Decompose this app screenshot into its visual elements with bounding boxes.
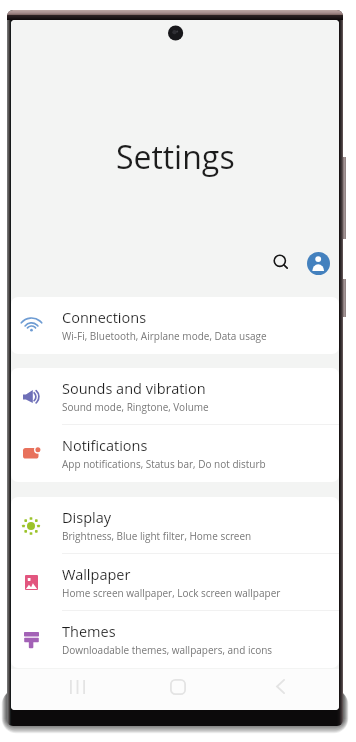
staticText: Sound mode, Ringtone, Volume (62, 400, 209, 414)
staticText: Sounds and vibration (62, 379, 206, 399)
button[interactable]: Display (11, 497, 339, 554)
staticText: Themes (62, 622, 116, 642)
staticText: App notifications, Status bar, Do not di… (62, 457, 266, 471)
staticText: Brightness, Blue light filter, Home scre… (62, 529, 252, 543)
button[interactable]: Wallpaper (11, 554, 339, 611)
button[interactable]: Samsung account (307, 252, 330, 275)
button[interactable]: Home (156, 666, 200, 707)
staticText: Wallpaper (62, 565, 131, 585)
button[interactable]: Notifications (11, 425, 339, 482)
button[interactable]: Back (258, 666, 302, 707)
staticText: Home screen wallpaper, Lock screen wallp… (62, 586, 281, 600)
staticText: Downloadable themes, wallpapers, and ico… (62, 643, 273, 657)
button[interactable]: Connections (11, 297, 339, 354)
button[interactable]: Themes (11, 611, 339, 668)
staticText: Wi-Fi, Bluetooth, Airplane mode, Data us… (62, 329, 267, 343)
staticText: Display (62, 508, 112, 528)
button[interactable]: Sounds and vibration (11, 368, 339, 425)
staticText: Connections (62, 308, 147, 328)
staticText: Notifications (62, 436, 148, 456)
staticText: Settings (116, 135, 235, 179)
button[interactable]: Recent apps (55, 666, 99, 707)
button[interactable]: Search (265, 246, 297, 278)
